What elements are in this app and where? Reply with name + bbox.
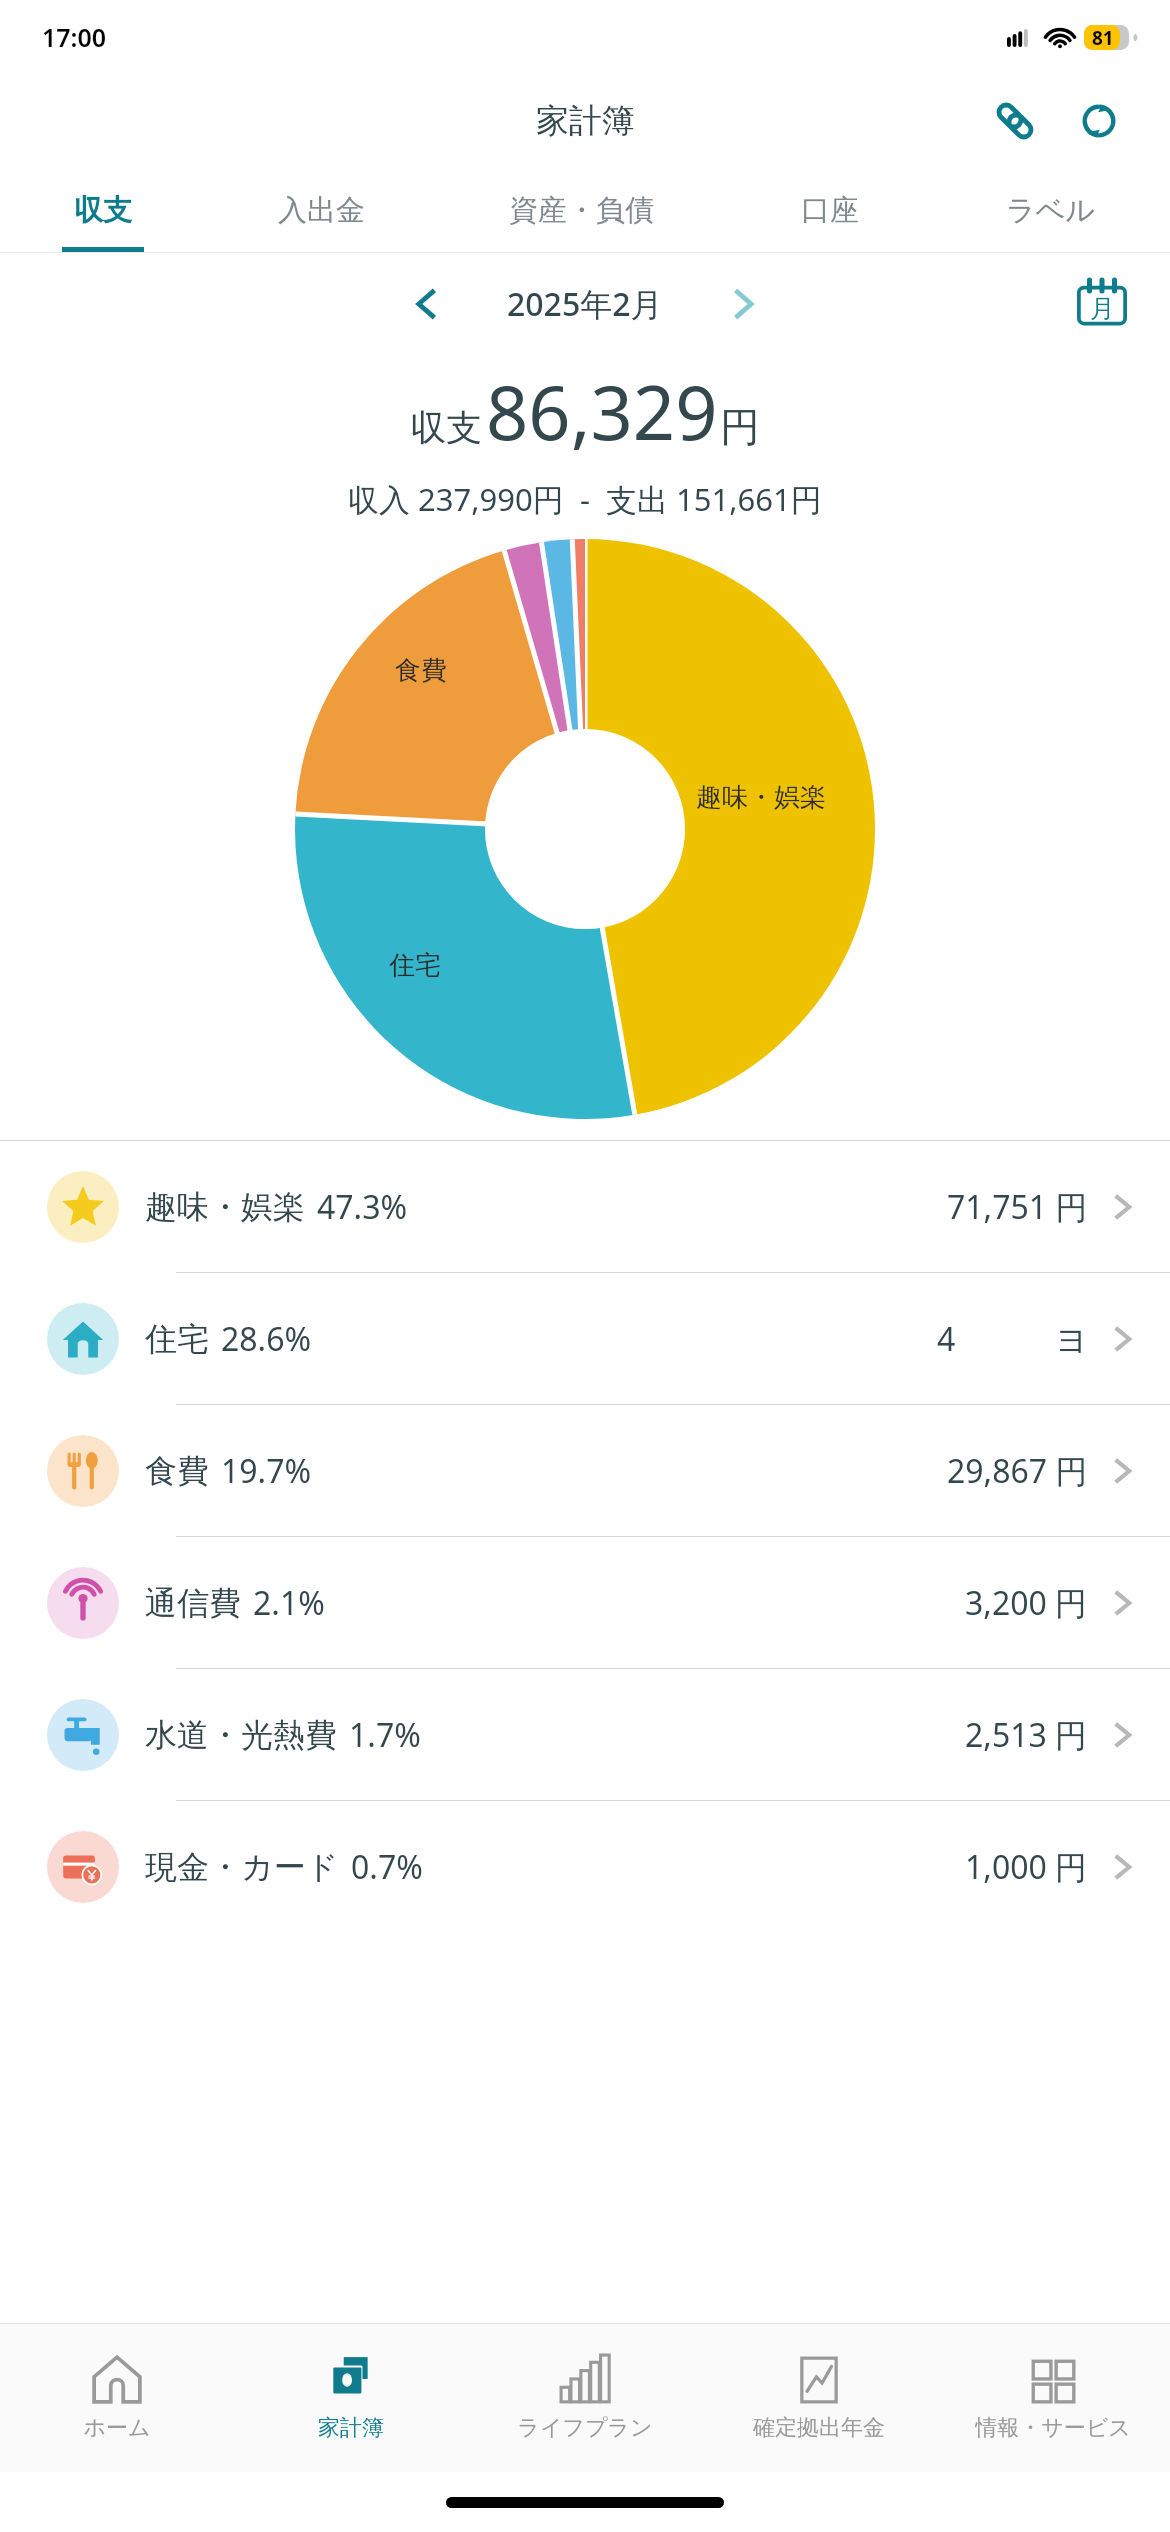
button[interactable]: 通信費 bbox=[0, 1537, 1170, 1668]
staticText: 口座 bbox=[801, 192, 859, 229]
staticText: 資産・負債 bbox=[509, 192, 654, 229]
button[interactable]: 口座 bbox=[727, 168, 932, 252]
staticText: 食費 bbox=[145, 1451, 209, 1491]
staticText: 19.7% bbox=[221, 1449, 312, 1493]
staticText: 4 ヨ bbox=[937, 1317, 1088, 1361]
staticText: 2,513 円 bbox=[965, 1713, 1088, 1757]
staticText: ホーム bbox=[83, 2414, 151, 2442]
button[interactable]: Link accounts bbox=[984, 90, 1046, 152]
staticText: 現金・カード bbox=[145, 1847, 339, 1887]
button[interactable]: 資産・負債 bbox=[436, 168, 727, 252]
button[interactable]: ライフプラン bbox=[468, 2324, 702, 2472]
staticText: 食費 bbox=[395, 654, 447, 687]
staticText: 水道・光熱費 bbox=[145, 1715, 337, 1755]
staticText: 3,200 円 bbox=[965, 1581, 1088, 1625]
staticText: 住宅 bbox=[145, 1319, 209, 1359]
staticText: 家計簿 bbox=[318, 2414, 384, 2442]
staticText: 家計簿 bbox=[536, 100, 635, 142]
staticText: 確定拠出年金 bbox=[753, 2414, 885, 2442]
staticText: 収支 bbox=[74, 192, 132, 229]
staticText: 17:00 bbox=[42, 20, 107, 54]
button[interactable]: 現金・カード bbox=[0, 1801, 1170, 1932]
staticText: 趣味・娯楽 bbox=[696, 781, 826, 814]
staticText: 28.6% bbox=[221, 1317, 312, 1361]
staticText: 趣味・娯楽 bbox=[145, 1187, 305, 1227]
button[interactable]: ラベル bbox=[932, 168, 1170, 252]
staticText: ライフプラン bbox=[517, 2414, 653, 2442]
button[interactable]: 食費 bbox=[0, 1405, 1170, 1536]
staticText: 0.7% bbox=[351, 1845, 423, 1889]
button[interactable]: 家計簿 bbox=[234, 2324, 468, 2472]
staticText: ラベル bbox=[1006, 192, 1096, 229]
staticText: 2025年2月 bbox=[507, 282, 663, 326]
button[interactable]: 水道・光熱費 bbox=[0, 1669, 1170, 1800]
staticText: 収入 237,990円 - 支出 151,661円 bbox=[348, 478, 822, 520]
button[interactable]: 入出金 bbox=[206, 168, 436, 252]
button[interactable]: Next month bbox=[707, 267, 781, 341]
button[interactable]: 収支 bbox=[0, 168, 206, 252]
button[interactable]: 住宅 bbox=[0, 1273, 1170, 1404]
staticText: 86,329 bbox=[486, 361, 718, 462]
staticText: 情報・サービス bbox=[975, 2414, 1131, 2442]
staticText: 47.3% bbox=[317, 1185, 408, 1229]
button[interactable]: 確定拠出年金 bbox=[702, 2324, 936, 2472]
staticText: 月 bbox=[1090, 293, 1115, 324]
staticText: 収支 bbox=[410, 405, 482, 450]
staticText: 81 bbox=[1092, 25, 1114, 50]
button[interactable]: Select month bbox=[1064, 266, 1140, 342]
staticText: 円 bbox=[720, 402, 760, 452]
button[interactable]: ホーム bbox=[0, 2324, 234, 2472]
staticText: 2.1% bbox=[253, 1581, 325, 1625]
staticText: 71,751 円 bbox=[947, 1185, 1088, 1229]
staticText: 1.7% bbox=[349, 1713, 421, 1757]
staticText: 1,000 円 bbox=[965, 1845, 1088, 1889]
staticText: 入出金 bbox=[278, 192, 365, 229]
staticText: 通信費 bbox=[145, 1583, 241, 1623]
button[interactable]: 情報・サービス bbox=[936, 2324, 1170, 2472]
button[interactable]: Previous month bbox=[389, 267, 463, 341]
button[interactable]: Refresh bbox=[1068, 90, 1130, 152]
button[interactable]: 趣味・娯楽 bbox=[0, 1141, 1170, 1272]
staticText: 29,867 円 bbox=[947, 1449, 1088, 1493]
staticText: 住宅 bbox=[389, 949, 441, 982]
